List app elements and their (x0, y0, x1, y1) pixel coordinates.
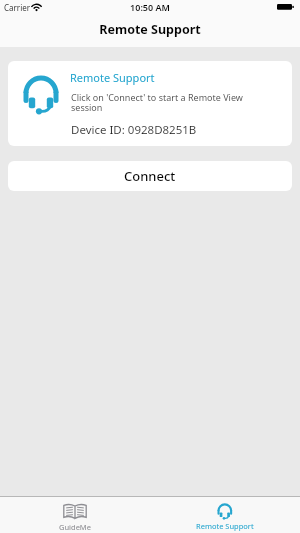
staticText: Device ID: 0928D8251B (71, 122, 197, 138)
button[interactable]: GuideMe (0, 497, 150, 533)
staticText: Remote Support (70, 70, 155, 85)
button[interactable]: Remote Support (8, 61, 292, 146)
staticText: Remote Support (196, 521, 254, 531)
staticText: Connect (124, 167, 176, 185)
staticText: Click on 'Connect' to start a Remote Vie… (71, 91, 243, 114)
staticText: Remote Support (0, 21, 300, 38)
staticText: 10:50 AM (0, 1, 300, 13)
staticText: GuideMe (59, 522, 91, 532)
button[interactable]: Remote Support (150, 497, 300, 533)
staticText: Carrier (4, 2, 31, 13)
button[interactable]: Connect (8, 161, 292, 191)
